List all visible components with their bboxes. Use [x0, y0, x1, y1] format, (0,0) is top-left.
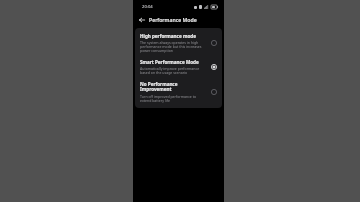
button[interactable]: Back [137, 15, 147, 25]
staticText: Automatically improve performance based … [140, 66, 207, 75]
staticText: No Performance Improvement [140, 81, 207, 93]
button[interactable]: Smart Performance Mode [135, 56, 222, 78]
button[interactable]: No Performance Improvement [135, 78, 222, 106]
staticText: High performance mode [140, 33, 196, 39]
staticText: Smart Performance Mode [140, 59, 199, 65]
staticText: Turn off improved performance to extend … [140, 94, 207, 103]
staticText: 20:04 [142, 4, 153, 10]
staticText: The system always operates in high perfo… [140, 40, 207, 53]
staticText: Performance Mode [149, 16, 197, 23]
button[interactable]: High performance mode [135, 30, 222, 56]
